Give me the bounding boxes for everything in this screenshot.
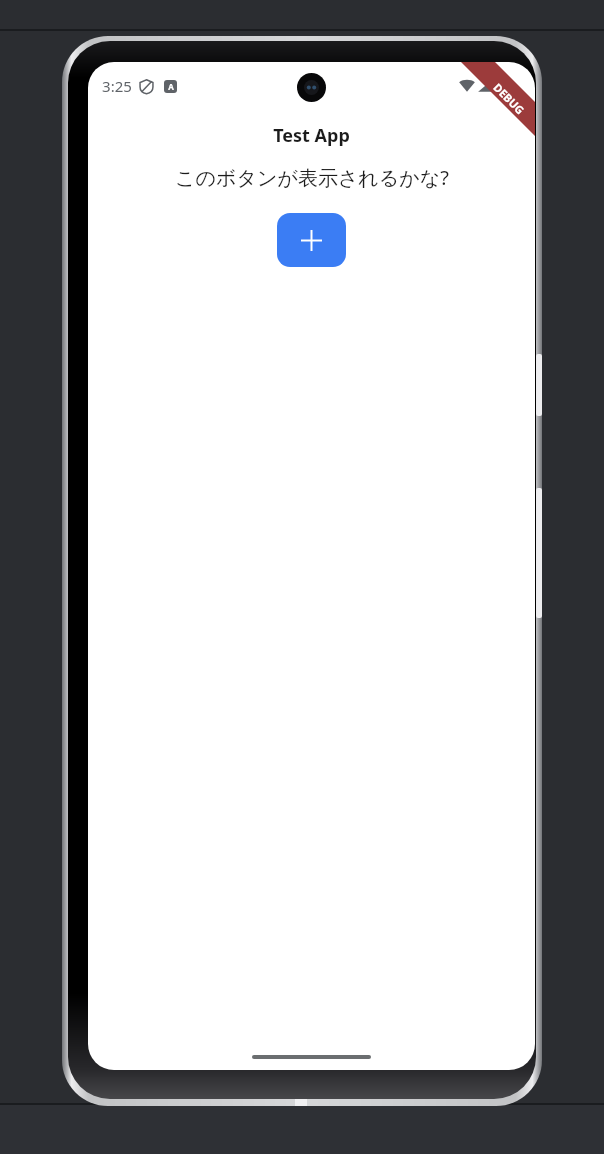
staticText: 3:25: [102, 76, 132, 96]
staticText: A: [168, 81, 174, 92]
staticText: Test App: [273, 123, 350, 148]
button[interactable]: Power: [536, 354, 542, 416]
staticText: このボタンが表示されるかな?: [175, 164, 449, 191]
button[interactable]: Volume: [536, 488, 542, 618]
staticText: DEBUG: [490, 80, 528, 117]
button[interactable]: Add: [277, 213, 346, 267]
